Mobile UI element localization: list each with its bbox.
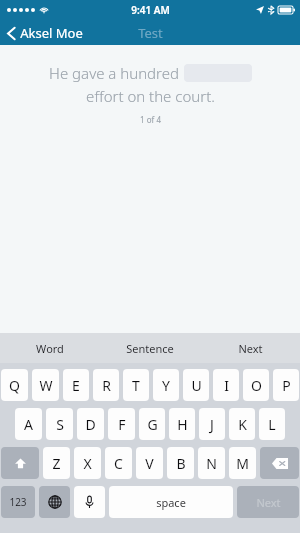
button[interactable]: J <box>199 408 225 440</box>
button[interactable]: H <box>169 408 195 440</box>
button[interactable]: space <box>109 486 233 518</box>
staticText: S <box>56 415 64 434</box>
staticText: H <box>177 415 188 434</box>
button[interactable]: R <box>93 369 119 401</box>
button[interactable]: Change keyboard language <box>39 486 70 518</box>
staticText: E <box>72 376 80 395</box>
staticText: I <box>224 376 229 395</box>
button[interactable]: Next <box>237 486 299 518</box>
button[interactable]: K <box>229 408 255 440</box>
staticText: G <box>147 415 158 434</box>
staticText: Next <box>238 341 263 356</box>
staticText: He gave a hundred <box>49 63 179 83</box>
button[interactable]: T <box>123 369 149 401</box>
staticText: 123 <box>9 495 27 509</box>
button[interactable]: L <box>259 408 285 440</box>
button[interactable]: Q <box>1 369 28 401</box>
staticText: Y <box>162 376 170 395</box>
staticText: T <box>132 376 140 395</box>
button[interactable]: U <box>183 369 209 401</box>
staticText: Sentence <box>126 341 174 356</box>
button[interactable]: F <box>108 408 135 440</box>
staticText: 9:41 AM <box>131 3 170 17</box>
button[interactable]: Shift <box>1 447 39 479</box>
button[interactable]: W <box>32 369 59 401</box>
button[interactable]: D <box>77 408 104 440</box>
staticText: P <box>282 376 291 395</box>
button[interactable]: I <box>213 369 239 401</box>
button[interactable]: Aksel Moe <box>0 21 93 45</box>
button[interactable]: X <box>74 447 101 479</box>
staticText: Z <box>52 454 61 473</box>
button[interactable]: Next <box>200 333 300 363</box>
button[interactable]: 123 <box>1 486 35 518</box>
staticText: D <box>85 415 96 434</box>
button[interactable]: V <box>136 447 163 479</box>
staticText: B <box>176 454 186 473</box>
staticText: R <box>102 376 111 395</box>
button[interactable]: Backspace <box>260 447 299 479</box>
button[interactable]: S <box>46 408 73 440</box>
staticText: C <box>114 454 123 473</box>
button[interactable]: A <box>15 408 42 440</box>
staticText: K <box>238 415 247 434</box>
staticText: effort on the court. <box>86 86 215 106</box>
staticText: F <box>118 415 126 434</box>
button[interactable]: O <box>243 369 269 401</box>
button[interactable]: C <box>105 447 132 479</box>
staticText: Test <box>138 24 163 42</box>
button[interactable]: E <box>63 369 89 401</box>
staticText: Aksel Moe <box>20 24 83 42</box>
staticText: Next <box>256 495 281 510</box>
staticText: X <box>83 454 92 473</box>
staticText: J <box>210 415 214 434</box>
staticText: M <box>236 454 249 473</box>
staticText: Word <box>36 341 64 356</box>
button[interactable]: Z <box>43 447 70 479</box>
button[interactable]: G <box>139 408 165 440</box>
button[interactable]: P <box>273 369 299 401</box>
staticText: U <box>191 376 202 395</box>
button[interactable]: N <box>198 447 225 479</box>
button[interactable]: Y <box>153 369 179 401</box>
staticText: O <box>251 376 262 395</box>
staticText: 1 of 4 <box>140 114 161 125</box>
staticText: V <box>145 454 154 473</box>
button[interactable]: Sentence <box>100 333 200 363</box>
staticText: W <box>39 376 53 395</box>
button[interactable]: Word <box>0 333 100 363</box>
staticText: N <box>206 454 217 473</box>
staticText: space <box>156 495 186 510</box>
staticText: L <box>268 415 276 434</box>
staticText: A <box>24 415 33 434</box>
button[interactable]: B <box>167 447 194 479</box>
button[interactable]: M <box>229 447 256 479</box>
button[interactable]: Dictation <box>74 486 105 518</box>
staticText: Q <box>9 376 20 395</box>
